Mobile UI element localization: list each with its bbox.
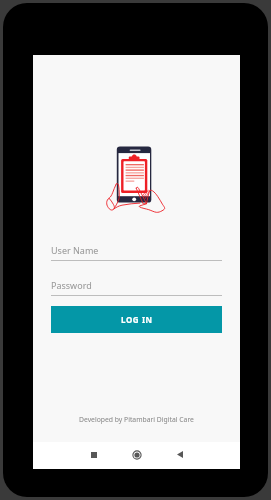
button[interactable]: User Name <box>51 244 222 261</box>
button[interactable]: LOG IN <box>51 306 222 333</box>
staticText: Developed by Pitambari Digital Care <box>79 415 194 424</box>
staticText: User Name <box>51 244 99 256</box>
button[interactable]: Home <box>127 442 147 467</box>
staticText: LOG IN <box>121 314 153 325</box>
button[interactable]: Recent apps <box>84 442 104 467</box>
staticText: Password <box>51 279 92 291</box>
button[interactable]: Password <box>51 279 222 296</box>
button[interactable]: Back <box>170 442 190 467</box>
